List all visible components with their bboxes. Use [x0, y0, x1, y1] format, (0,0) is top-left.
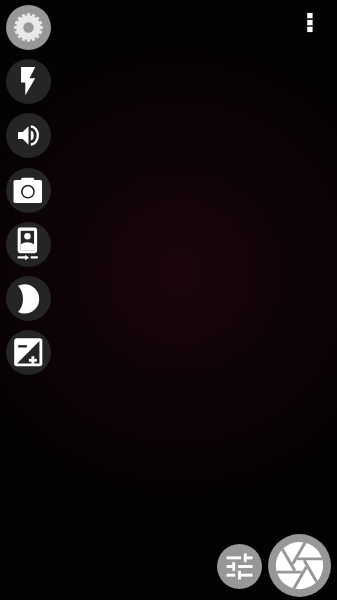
button[interactable]: Camera mode — [6, 168, 51, 213]
button[interactable]: Switch camera — [6, 222, 51, 267]
button[interactable]: Exposure — [6, 330, 51, 375]
button[interactable]: Night mode — [6, 276, 51, 321]
button[interactable]: Shutter — [268, 534, 331, 597]
button[interactable]: Sound — [6, 113, 51, 158]
button[interactable]: Settings sliders — [217, 544, 262, 589]
button[interactable]: Settings — [6, 5, 51, 50]
button[interactable]: Flash — [6, 59, 51, 104]
button[interactable]: More options — [297, 4, 323, 38]
